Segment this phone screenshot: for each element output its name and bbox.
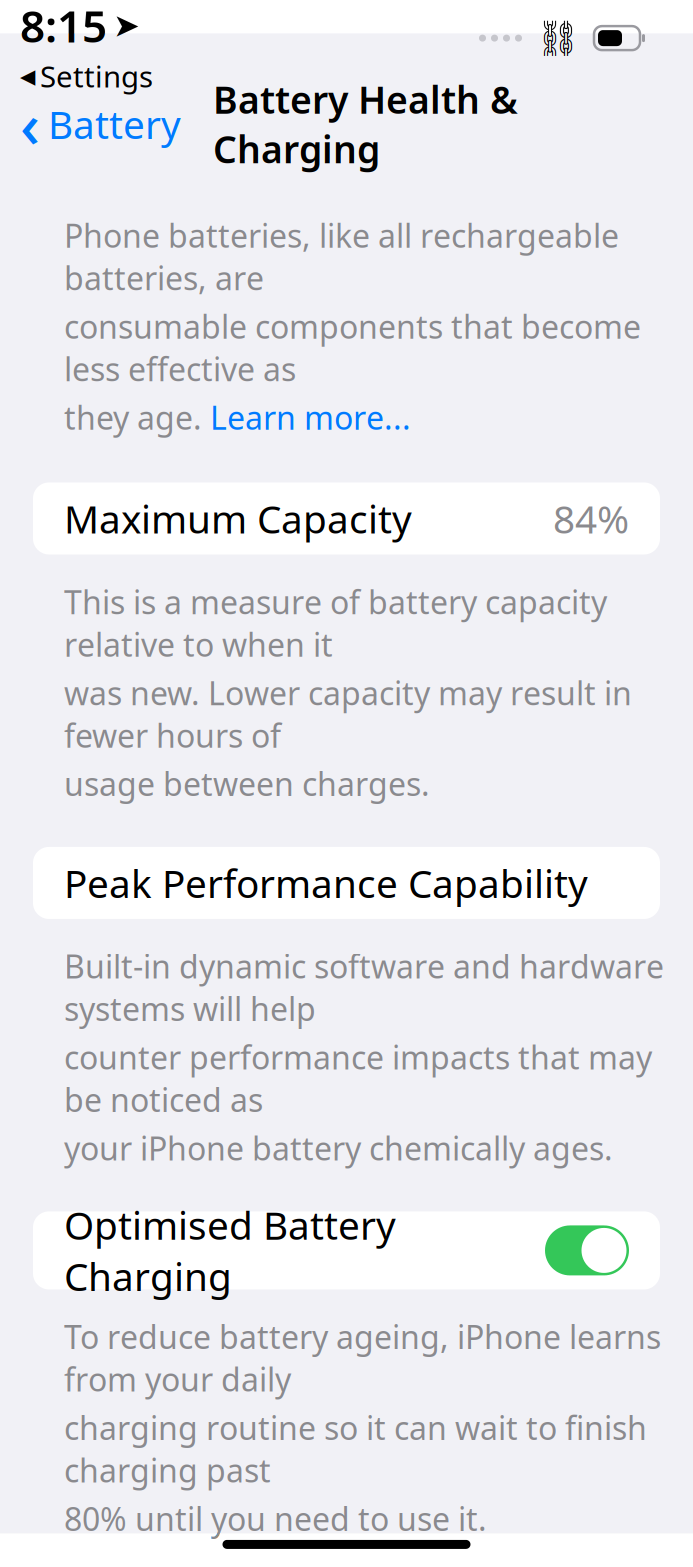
staticText: consumable components that become less e… (64, 305, 641, 390)
staticText: they age. (64, 396, 210, 438)
button[interactable]: Optimised Battery Charging (33, 1211, 660, 1289)
button[interactable]: ◀ (20, 57, 153, 96)
staticText: ◀ (20, 65, 35, 88)
button[interactable]: ‹ (0, 79, 181, 169)
staticText: Built-in dynamic software and hardware s… (64, 945, 664, 1030)
staticText: Learn more... (210, 396, 411, 438)
staticText: your iPhone battery chemically ages. (64, 1127, 613, 1169)
staticText: Peak Performance Capability (64, 857, 588, 909)
staticText: Battery (48, 98, 181, 150)
staticText: Optimised Battery Charging (64, 1199, 396, 1302)
staticText: Phone batteries, like all rechargeable b… (64, 214, 619, 299)
button[interactable]: Maximum Capacity (33, 482, 660, 554)
staticText: Settings (40, 57, 153, 96)
staticText: was new. Lower capacity may result in fe… (64, 671, 632, 756)
staticText: 80% until you need to use it. (64, 1497, 487, 1540)
staticText: Battery Health & Charging (213, 74, 518, 174)
button[interactable]: Peak Performance Capability (33, 847, 660, 919)
staticText: 84% (553, 493, 629, 544)
staticText: To reduce battery ageing, iPhone learns … (64, 1315, 661, 1400)
staticText: counter performance impacts that may be … (64, 1036, 652, 1121)
staticText: ⛓ (536, 18, 580, 58)
staticText: ➤ (113, 7, 140, 44)
staticText: Maximum Capacity (64, 493, 412, 544)
staticText: charging routine so it can wait to finis… (64, 1406, 647, 1491)
staticText: ‹ (20, 83, 40, 165)
staticText: 8:15 (20, 0, 107, 55)
staticText: usage between charges. (64, 762, 430, 805)
button[interactable]: Learn more... (210, 396, 411, 438)
staticText: This is a measure of battery capacity re… (64, 580, 607, 665)
